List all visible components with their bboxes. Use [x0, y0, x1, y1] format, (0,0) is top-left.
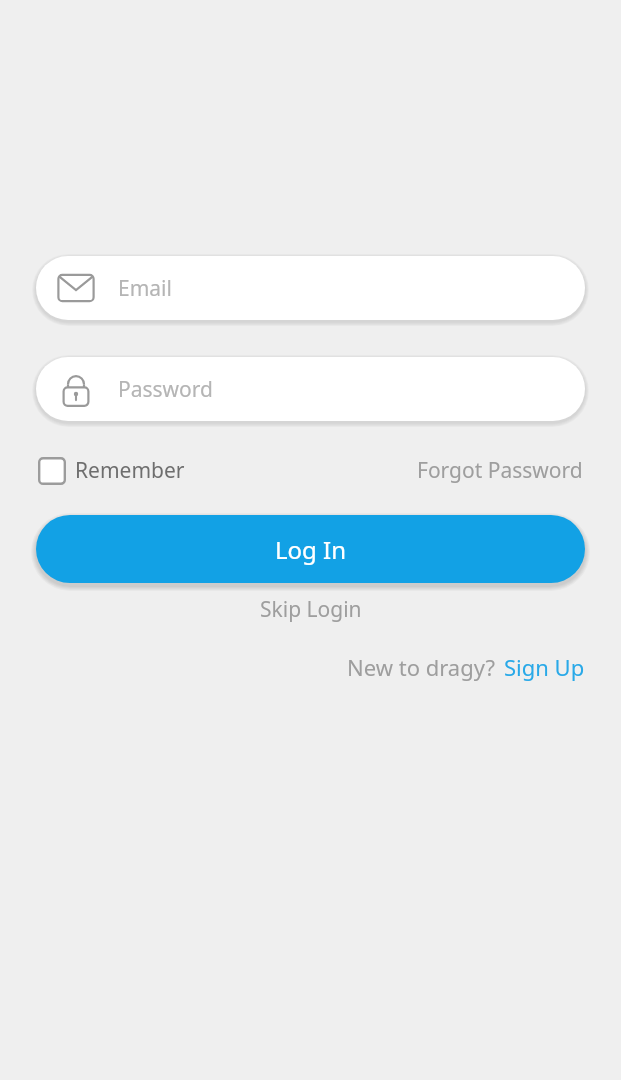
button[interactable]: Password [36, 357, 585, 421]
staticText: Forgot Password [417, 456, 583, 485]
button[interactable]: Skip Login [252, 591, 370, 628]
button[interactable]: Email [36, 256, 585, 320]
staticText: Email [118, 274, 172, 303]
button[interactable]: Forgot Password [415, 452, 585, 489]
staticText: Remember [75, 456, 185, 485]
staticText: Log In [275, 533, 347, 566]
staticText: Password [118, 375, 213, 404]
button[interactable]: Sign Up [504, 649, 585, 685]
button[interactable]: Log In [36, 515, 585, 583]
staticText: Skip Login [260, 595, 362, 624]
staticText: New to dragy? [347, 652, 495, 682]
button[interactable]: Remember checkbox [36, 452, 187, 489]
other: Email [56, 268, 96, 308]
staticText: Sign Up [504, 652, 585, 682]
other: Remember checkbox [38, 457, 66, 485]
other: Password [56, 369, 96, 409]
